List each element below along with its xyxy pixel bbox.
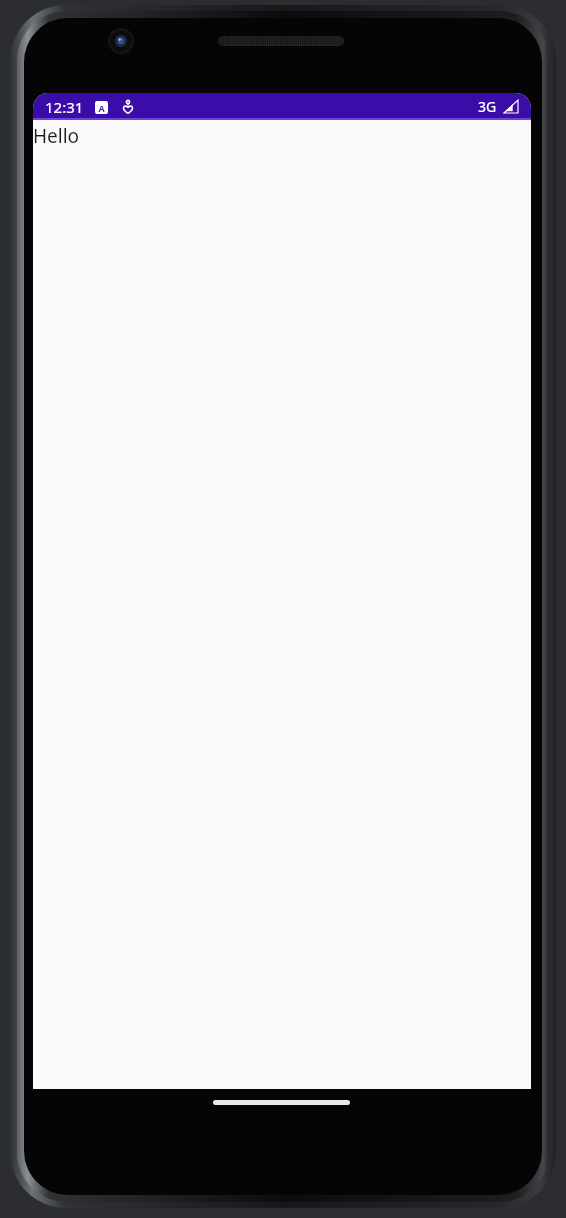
other: Signal strength <box>504 100 518 113</box>
button[interactable]: Hello <box>33 123 80 149</box>
staticText: A <box>98 102 105 114</box>
staticText: 3G <box>478 97 497 116</box>
staticText: 12:31 <box>45 97 84 117</box>
other: Notification <box>95 101 108 114</box>
other: Health <box>121 100 135 114</box>
button[interactable]: Home gesture bar <box>213 1100 350 1105</box>
